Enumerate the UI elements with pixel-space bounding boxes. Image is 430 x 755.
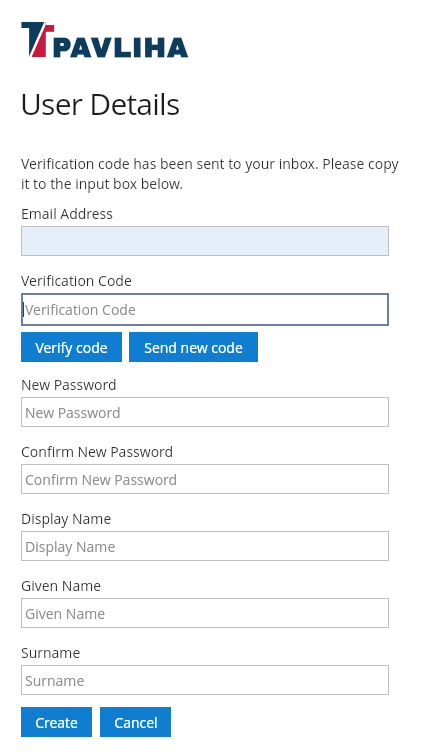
staticText: New Password: [25, 403, 121, 422]
button[interactable]: Surname: [21, 665, 389, 695]
staticText: Display Name: [25, 537, 116, 556]
staticText: New Password: [21, 375, 117, 394]
button[interactable]: Cancel: [100, 707, 171, 737]
staticText: Create: [35, 713, 78, 732]
staticText: Given Name: [25, 604, 106, 623]
staticText: Surname: [25, 671, 85, 690]
staticText: Verification Code: [25, 300, 136, 319]
staticText: Verification code has been sent to your …: [21, 154, 408, 194]
staticText: Surname: [21, 643, 81, 662]
button[interactable]: Create: [21, 707, 92, 737]
staticText: Send new code: [144, 338, 243, 357]
staticText: User Details: [20, 83, 180, 124]
staticText: Cancel: [114, 713, 158, 732]
button[interactable]: Confirm New Password: [21, 464, 389, 494]
staticText: Verification Code: [21, 271, 132, 290]
staticText: PAVLIHA: [52, 33, 190, 62]
button[interactable]: Verify code: [21, 332, 122, 362]
staticText: Confirm New Password: [25, 470, 178, 489]
staticText: Display Name: [21, 509, 112, 528]
staticText: Given Name: [21, 576, 102, 595]
button[interactable]: Send new code: [129, 332, 258, 362]
staticText: Verify code: [35, 338, 108, 357]
button[interactable]: [21, 226, 389, 256]
button[interactable]: New Password: [21, 397, 389, 427]
button[interactable]: Display Name: [21, 531, 389, 561]
button[interactable]: Given Name: [21, 598, 389, 628]
staticText: Confirm New Password: [21, 442, 174, 461]
staticText: Email Address: [21, 204, 113, 223]
button[interactable]: Verification Code: [21, 293, 389, 326]
